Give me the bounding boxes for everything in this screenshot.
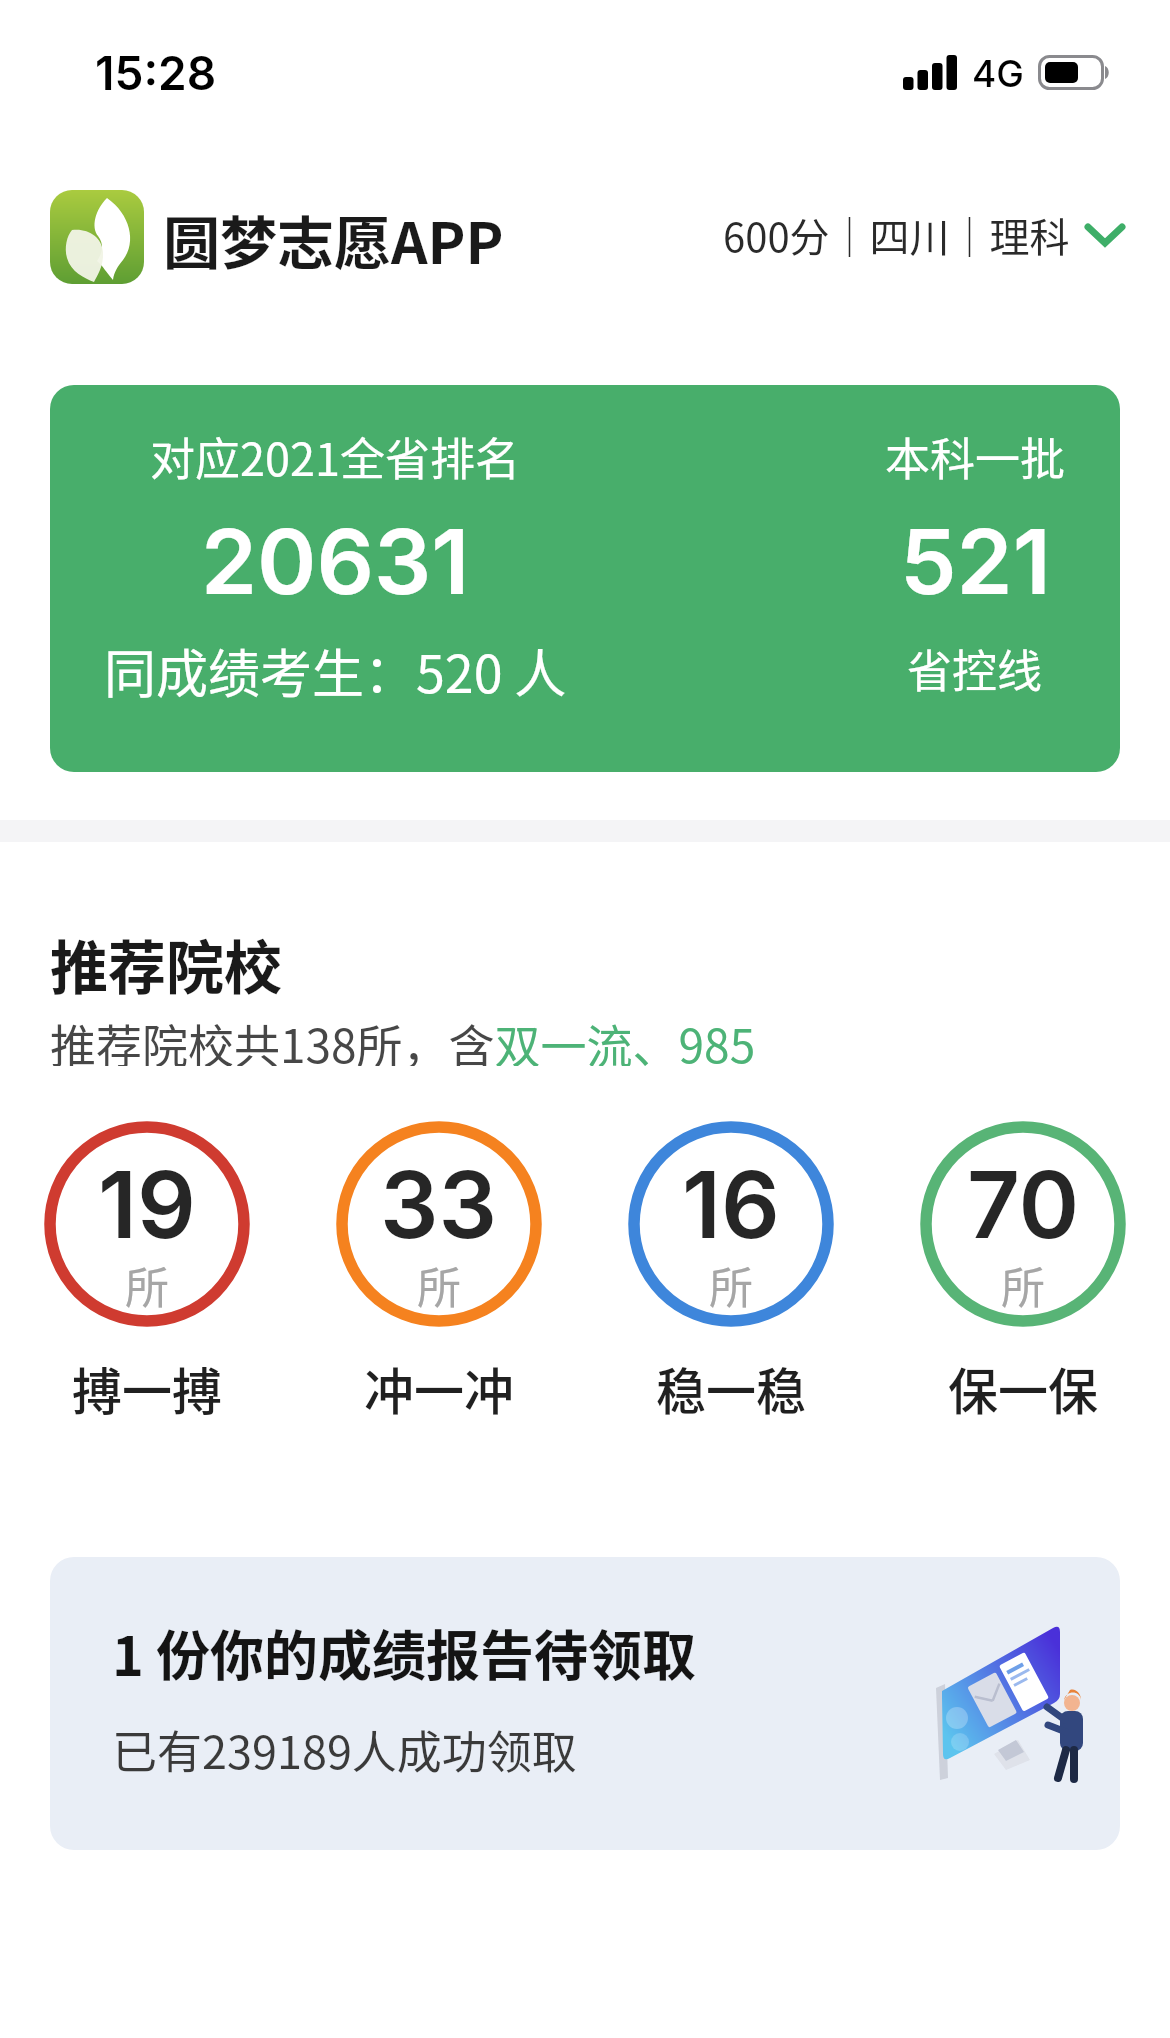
staticText: 600分｜四川｜理科 <box>723 206 1070 264</box>
staticText: 1 份你的成绩报告待领取 <box>112 1613 697 1681</box>
staticText: 521 <box>900 507 1051 616</box>
staticText: 16 <box>682 1149 780 1260</box>
staticText: 已有239189人成功领取 <box>112 1717 577 1781</box>
staticText: 20631 <box>201 507 470 616</box>
staticText: 4G <box>972 51 1024 96</box>
staticText: 省控线 <box>907 636 1043 701</box>
staticText: 保一保 <box>948 1352 1098 1418</box>
staticText: 推荐院校共138所，含双一流、985 <box>50 1010 756 1066</box>
staticText: 同成绩考生：520 人 <box>104 633 567 703</box>
staticText: 推荐院校 <box>50 922 283 998</box>
staticText: 15:28 <box>95 45 217 101</box>
button[interactable]: 对应2021全省排名 <box>50 385 1120 772</box>
staticText: 所 <box>709 1253 753 1317</box>
button[interactable]: 70 <box>877 1118 1169 1418</box>
button[interactable]: 600分｜四川｜理科 <box>660 196 1128 276</box>
staticText: 所 <box>417 1253 461 1317</box>
staticText: 搏一搏 <box>72 1352 222 1418</box>
staticText: 对应2021全省排名 <box>150 424 520 489</box>
staticText: 70 <box>967 1149 1080 1260</box>
staticText: 所 <box>125 1253 169 1317</box>
staticText: 本科一批 <box>885 424 1066 489</box>
staticText: 圆梦志愿APP <box>163 198 504 274</box>
button[interactable]: 19 <box>1 1118 293 1418</box>
button[interactable]: 1 份你的成绩报告待领取 <box>50 1557 1120 1850</box>
staticText: 19 <box>98 1149 196 1260</box>
staticText: 33 <box>380 1149 498 1260</box>
button[interactable]: 33 <box>293 1118 585 1418</box>
staticText: 稳一稳 <box>656 1352 806 1418</box>
staticText: 所 <box>1001 1253 1045 1317</box>
staticText: 冲一冲 <box>364 1352 514 1418</box>
button[interactable]: 16 <box>585 1118 877 1418</box>
